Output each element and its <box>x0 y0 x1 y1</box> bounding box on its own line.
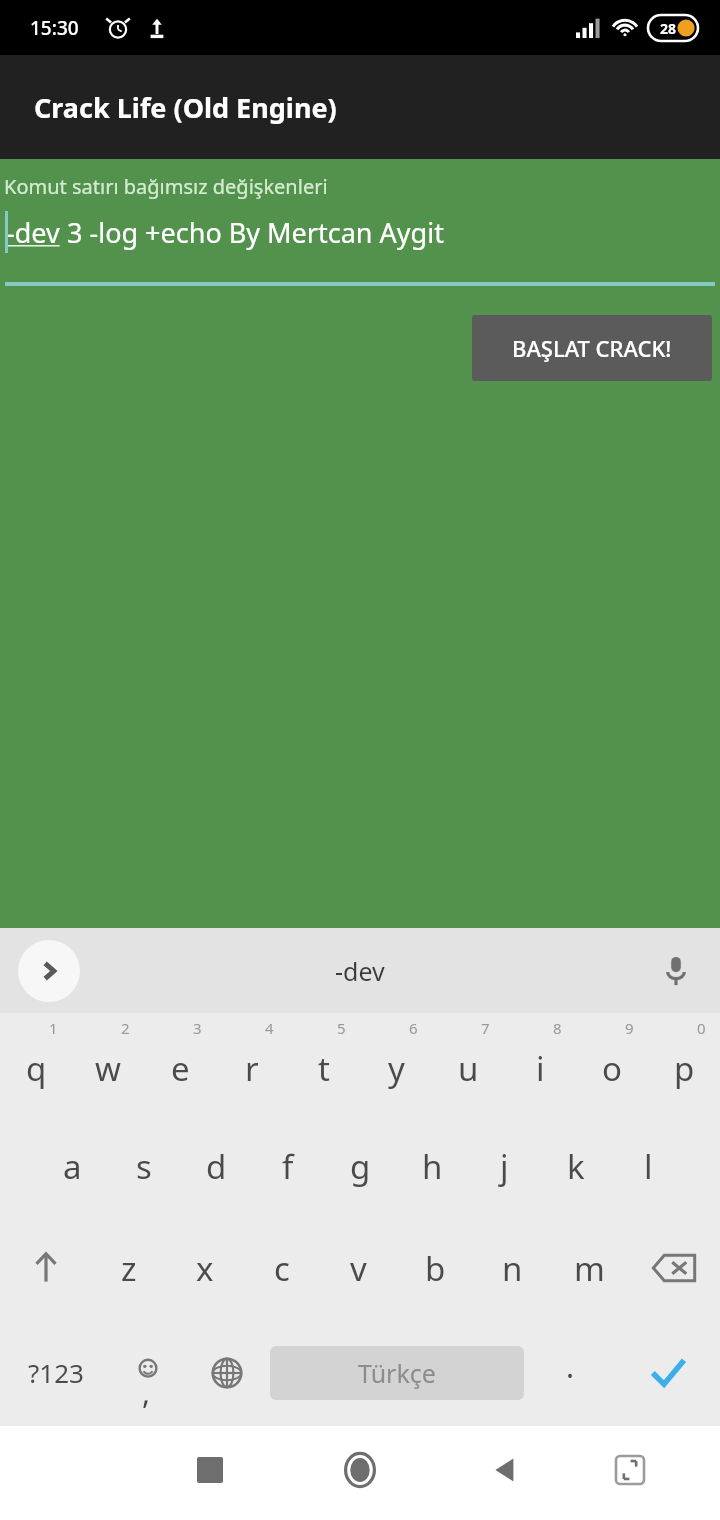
button[interactable]: i <box>504 1013 576 1115</box>
staticText: m <box>574 1246 605 1291</box>
staticText: 6 <box>409 1018 418 1038</box>
button[interactable]: y <box>360 1013 432 1115</box>
staticText: 7 <box>481 1018 490 1038</box>
button[interactable]: . <box>524 1319 616 1426</box>
staticText: g <box>350 1144 371 1189</box>
staticText: r <box>245 1046 259 1091</box>
button[interactable]: Shift <box>0 1217 91 1319</box>
staticText: ?123 <box>28 1355 84 1390</box>
staticText: d <box>206 1144 227 1189</box>
button[interactable]: c <box>243 1217 320 1319</box>
staticText: v <box>350 1246 367 1291</box>
button[interactable]: v <box>320 1217 397 1319</box>
button[interactable]: z <box>91 1217 167 1319</box>
staticText: 4 <box>265 1018 274 1038</box>
staticText: o <box>602 1046 622 1091</box>
staticText: 2 <box>121 1018 130 1038</box>
staticText: y <box>388 1046 405 1091</box>
staticText: w <box>95 1046 121 1091</box>
button[interactable]: Home <box>330 1440 390 1500</box>
button[interactable]: Back <box>475 1440 535 1500</box>
button[interactable]: b <box>397 1217 474 1319</box>
button[interactable]: Expand toolbar <box>18 940 80 1002</box>
button[interactable]: e <box>144 1013 216 1115</box>
button[interactable]: m <box>551 1217 628 1319</box>
staticText: 5 <box>337 1018 346 1038</box>
staticText: BAŞLAT CRACK! <box>512 333 672 363</box>
button[interactable]: k <box>540 1115 612 1217</box>
staticText: 3 -log +echo By Mertcan Aygit <box>60 214 444 251</box>
staticText: 3 <box>193 1018 202 1038</box>
staticText: 28 <box>660 19 677 38</box>
button[interactable]: j <box>468 1115 540 1217</box>
staticText: f <box>282 1144 294 1189</box>
staticText: z <box>121 1246 137 1291</box>
button[interactable]: BAŞLAT CRACK! <box>472 315 712 381</box>
staticText: k <box>567 1144 585 1189</box>
staticText: b <box>425 1246 446 1291</box>
button[interactable]: Split screen <box>600 1440 660 1500</box>
staticText: , <box>142 1372 151 1413</box>
staticText: q <box>26 1046 47 1091</box>
button[interactable]: Backspace <box>628 1217 720 1319</box>
button[interactable]: a <box>36 1115 108 1217</box>
button[interactable]: Done <box>616 1319 720 1426</box>
button[interactable]: r <box>216 1013 288 1115</box>
button[interactable]: h <box>396 1115 468 1217</box>
staticText: t <box>318 1046 330 1091</box>
button[interactable]: u <box>432 1013 504 1115</box>
staticText: s <box>136 1144 152 1189</box>
button[interactable]: Change language <box>184 1319 270 1426</box>
button[interactable]: n <box>474 1217 551 1319</box>
button[interactable]: w <box>72 1013 144 1115</box>
button[interactable]: p <box>648 1013 720 1115</box>
staticText: 0 <box>697 1018 706 1038</box>
button[interactable]: o <box>576 1013 648 1115</box>
staticText: j <box>500 1144 509 1189</box>
button[interactable]: d <box>180 1115 252 1217</box>
staticText: c <box>274 1246 290 1291</box>
button[interactable]: q <box>0 1013 72 1115</box>
button[interactable]: t <box>288 1013 360 1115</box>
staticText: 15:30 <box>30 15 79 41</box>
button[interactable]: s <box>108 1115 180 1217</box>
staticText: 8 <box>553 1018 562 1038</box>
button[interactable]: g <box>324 1115 396 1217</box>
button[interactable]: Voice input <box>652 947 700 995</box>
staticText: -dev <box>335 954 385 988</box>
staticText: Komut satırı bağımsız değişkenleri <box>4 173 328 200</box>
staticText: h <box>422 1144 443 1189</box>
staticText: i <box>536 1046 545 1091</box>
staticText: -dev <box>6 214 60 251</box>
staticText: u <box>458 1046 479 1091</box>
staticText: l <box>644 1144 653 1189</box>
button[interactable]: Türkçe <box>270 1346 524 1400</box>
staticText: e <box>171 1046 190 1091</box>
staticText: a <box>63 1144 82 1189</box>
staticText: x <box>196 1246 214 1291</box>
button[interactable]: ?123 <box>0 1319 112 1426</box>
staticText: n <box>502 1246 523 1291</box>
button[interactable]: Recents <box>180 1440 240 1500</box>
button[interactable]: Emoji <box>112 1319 184 1426</box>
staticText: Crack Life (Old Engine) <box>34 89 337 126</box>
button[interactable]: f <box>252 1115 324 1217</box>
staticText: 1 <box>49 1018 58 1038</box>
staticText: Türkçe <box>358 1356 436 1390</box>
staticText: p <box>674 1046 695 1091</box>
staticText: . <box>566 1346 575 1387</box>
button[interactable]: l <box>612 1115 684 1217</box>
staticText: 9 <box>625 1018 634 1038</box>
button[interactable]: x <box>167 1217 243 1319</box>
